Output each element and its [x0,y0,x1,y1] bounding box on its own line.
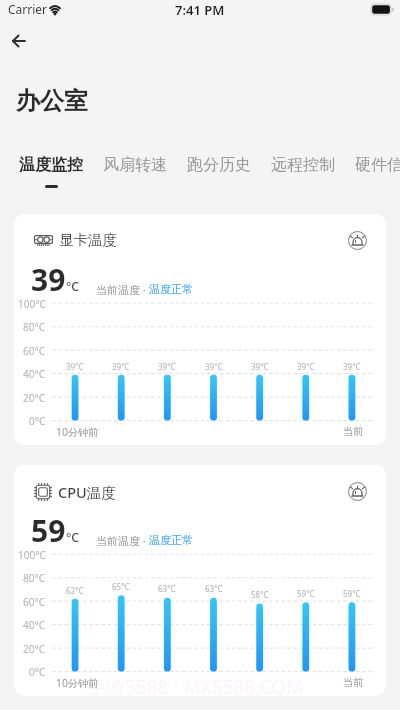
staticText: 10分钟前 [56,425,99,439]
button[interactable]: 温度监控 [19,155,83,188]
button[interactable]: 远程控制 [271,155,335,185]
button[interactable]: Alarm settings [346,480,368,502]
staticText: 当前温度 · [96,533,149,548]
staticText: 39°C [343,361,361,372]
staticText: 65°C [112,581,130,592]
staticText: 80°C [23,320,46,334]
staticText: 7:41 PM [175,1,225,19]
staticText: 63°C [205,583,223,594]
staticText: 60°C [23,344,46,358]
staticText: 39°C [205,361,223,372]
staticText: 39°C [251,361,269,372]
staticText: CPU温度 [58,482,116,502]
staticText: 63°C [158,583,176,594]
staticText: 温度正常 [149,533,193,547]
staticText: 40°C [23,367,46,381]
button[interactable]: 显卡温度 [14,214,386,445]
button[interactable]: Alarm settings [346,229,368,251]
staticText: 80°C [23,571,46,585]
staticText: 59°C [297,588,315,599]
staticText: 硬件信息 [355,155,400,175]
staticText: 办公室 [16,86,88,116]
staticText: 20°C [23,642,46,656]
staticText: 风扇转速 [103,155,167,175]
staticText: 显卡温度 [59,231,117,249]
staticText: Carrier [8,1,48,17]
staticText: 手游5588 · MX5588.COM [87,674,304,700]
staticText: 10分钟前 [56,676,99,690]
staticText: 60°C [23,595,46,609]
staticText: 20°C [23,391,46,405]
staticText: 温度正常 [149,282,193,296]
staticText: 温度监控 [19,155,83,175]
staticText: 0°C [29,665,46,679]
staticText: 59 [31,510,66,551]
button[interactable]: 风扇转速 [103,155,167,185]
staticText: 39°C [297,361,315,372]
staticText: 59°C [343,588,361,599]
button[interactable]: Back [6,28,32,54]
staticText: °C [66,529,80,546]
staticText: 当前 [343,676,364,689]
staticText: 39°C [66,361,84,372]
staticText: 39 [31,259,66,300]
staticText: 远程控制 [271,155,335,175]
staticText: 39°C [112,361,130,372]
staticText: 39°C [158,361,176,372]
staticText: 跑分历史 [187,155,251,175]
button[interactable]: 硬件信息 [355,155,400,185]
staticText: °C [66,278,80,295]
staticText: 0°C [29,414,46,428]
button[interactable]: 跑分历史 [187,155,251,185]
staticText: 40°C [23,618,46,632]
staticText: 58°C [251,589,269,600]
button[interactable]: CPU温度 [14,465,386,696]
staticText: 当前温度 · [96,282,149,297]
staticText: 100°C [18,297,46,311]
staticText: 62°C [66,585,84,596]
staticText: 100°C [18,548,46,562]
staticText: 当前 [343,425,364,438]
